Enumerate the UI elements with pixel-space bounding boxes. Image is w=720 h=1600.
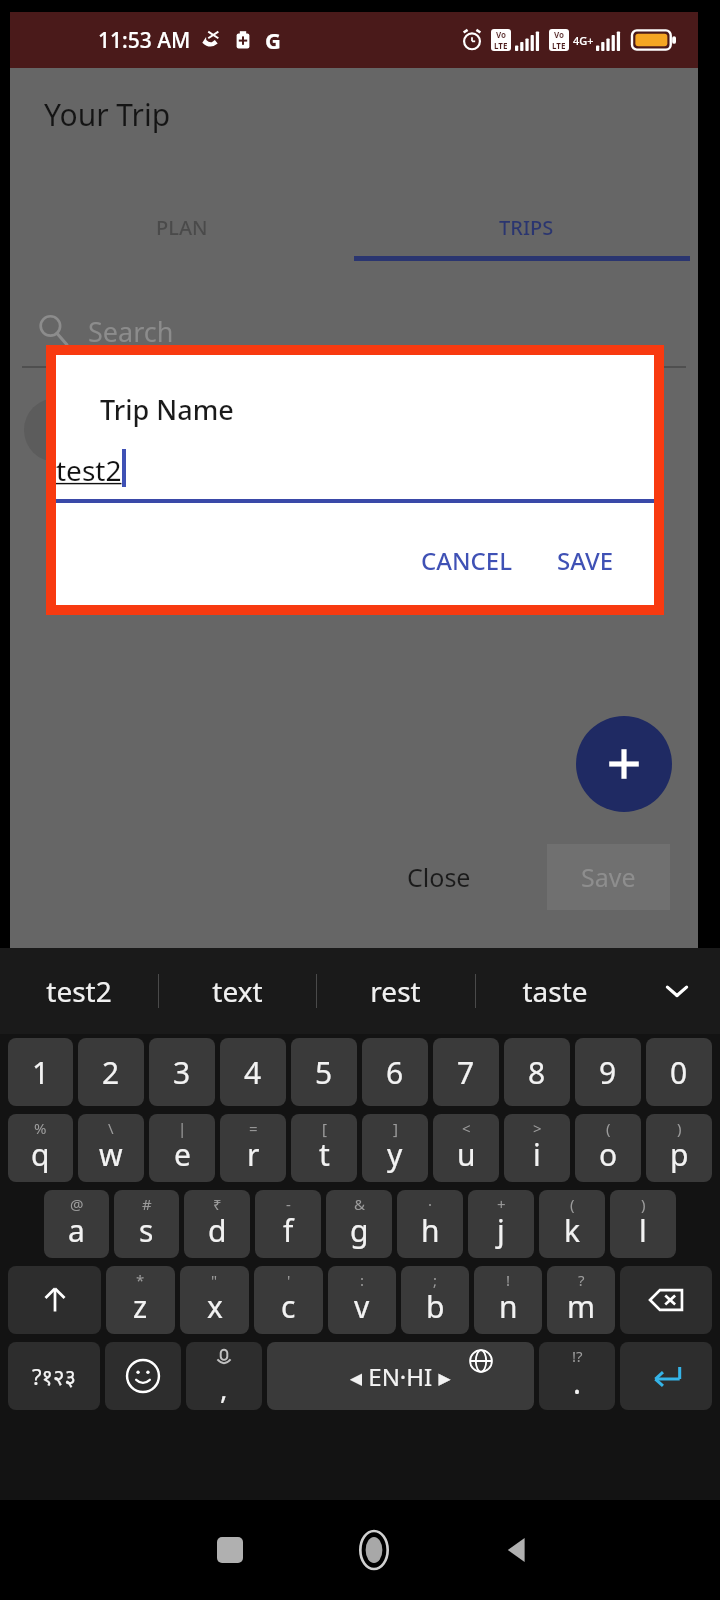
button[interactable]: ?	[547, 1266, 615, 1334]
staticText: 7	[457, 1052, 475, 1093]
button[interactable]: )	[646, 1114, 712, 1182]
button[interactable]: |	[149, 1114, 215, 1182]
button[interactable]: Home	[302, 1500, 446, 1600]
staticText: k	[564, 1210, 581, 1251]
staticText: !	[506, 1270, 511, 1290]
button[interactable]: +	[468, 1190, 534, 1258]
button[interactable]: !?	[539, 1342, 615, 1410]
button[interactable]: 0	[646, 1038, 712, 1106]
button[interactable]: text	[158, 948, 316, 1034]
button[interactable]: emoji	[105, 1342, 181, 1410]
button[interactable]: 6	[362, 1038, 428, 1106]
button[interactable]: ;	[401, 1266, 469, 1334]
staticText: g	[350, 1210, 369, 1251]
staticText: LTE	[552, 40, 566, 51]
staticText: :	[360, 1270, 365, 1290]
button[interactable]: )	[610, 1190, 676, 1258]
button[interactable]: ·	[397, 1190, 463, 1258]
staticText: 6	[386, 1052, 404, 1093]
staticText: ,	[220, 1369, 228, 1407]
button[interactable]: shift	[8, 1266, 101, 1334]
staticText: >	[533, 1118, 542, 1138]
button[interactable]: 5	[291, 1038, 357, 1106]
staticText: ]	[393, 1118, 398, 1138]
staticText: 11:53 AM	[98, 26, 191, 55]
staticText: ·	[428, 1194, 433, 1214]
button[interactable]: :	[328, 1266, 396, 1334]
staticText: ?१२३	[32, 1361, 76, 1391]
button[interactable]: 4	[220, 1038, 286, 1106]
staticText: b	[426, 1286, 445, 1327]
staticText: o	[599, 1134, 618, 1175]
staticText: q	[31, 1134, 50, 1175]
button[interactable]: Back	[446, 1500, 590, 1600]
button[interactable]: TRIPS	[354, 190, 698, 264]
staticText: \	[108, 1118, 114, 1138]
staticText: p	[670, 1134, 689, 1175]
button[interactable]: >	[504, 1114, 570, 1182]
button[interactable]: ₹	[184, 1190, 250, 1258]
button[interactable]: ◂ EN·HI ▸	[267, 1342, 534, 1410]
staticText: TRIPS	[499, 214, 554, 241]
button[interactable]: backspace	[620, 1266, 712, 1334]
button[interactable]: 1	[8, 1038, 73, 1106]
button[interactable]: "	[180, 1266, 249, 1334]
staticText: 9	[599, 1052, 617, 1093]
staticText: 4G+	[573, 33, 594, 48]
button[interactable]: rest	[316, 948, 475, 1034]
button[interactable]: CANCEL	[405, 532, 529, 589]
button[interactable]: ,	[186, 1342, 262, 1410]
button[interactable]: (	[575, 1114, 641, 1182]
staticText: f	[283, 1210, 294, 1251]
staticText: 3	[173, 1052, 191, 1093]
button[interactable]: =	[220, 1114, 286, 1182]
staticText: w	[99, 1134, 123, 1175]
button[interactable]: *	[106, 1266, 175, 1334]
button[interactable]: 3	[149, 1038, 215, 1106]
button[interactable]: Expand suggestions	[634, 948, 720, 1034]
button[interactable]: Recents	[158, 1500, 302, 1600]
button[interactable]: @	[44, 1190, 109, 1258]
button[interactable]: 8	[504, 1038, 570, 1106]
staticText: +	[497, 1194, 506, 1214]
button[interactable]: #	[114, 1190, 179, 1258]
button[interactable]: (	[539, 1190, 605, 1258]
button[interactable]: Add trip	[576, 716, 672, 812]
button[interactable]: -	[255, 1190, 321, 1258]
button[interactable]: taste	[475, 948, 634, 1034]
button[interactable]: 7	[433, 1038, 499, 1106]
button[interactable]: test2	[0, 948, 158, 1034]
staticText: #	[142, 1194, 152, 1214]
staticText: y	[387, 1134, 403, 1175]
button[interactable]: ]	[362, 1114, 428, 1182]
staticText: t	[319, 1134, 330, 1175]
button[interactable]: '	[254, 1266, 323, 1334]
button[interactable]: !	[474, 1266, 542, 1334]
button[interactable]: Save	[547, 844, 670, 910]
staticText: 5	[315, 1052, 333, 1093]
staticText: e	[174, 1134, 191, 1175]
staticText: &	[354, 1194, 365, 1214]
button[interactable]: [	[291, 1114, 357, 1182]
staticText: v	[354, 1286, 370, 1327]
button[interactable]: \	[78, 1114, 144, 1182]
button[interactable]: Close	[385, 846, 493, 908]
staticText: m	[567, 1286, 596, 1327]
staticText: u	[457, 1134, 476, 1175]
button[interactable]: ?१२३	[8, 1342, 100, 1410]
button[interactable]: <	[433, 1114, 499, 1182]
staticText: [	[322, 1118, 327, 1138]
button[interactable]: 2	[78, 1038, 144, 1106]
button[interactable]: &	[326, 1190, 392, 1258]
staticText: Vo	[554, 29, 565, 40]
staticText: )	[641, 1194, 646, 1214]
button[interactable]: enter	[620, 1342, 712, 1410]
staticText: rest	[370, 972, 421, 1010]
button[interactable]: %	[8, 1114, 73, 1182]
staticText: z	[133, 1286, 148, 1327]
staticText: c	[281, 1286, 296, 1327]
button[interactable]: Search	[10, 300, 698, 362]
button[interactable]: 9	[575, 1038, 641, 1106]
button[interactable]: SAVE	[541, 532, 630, 589]
